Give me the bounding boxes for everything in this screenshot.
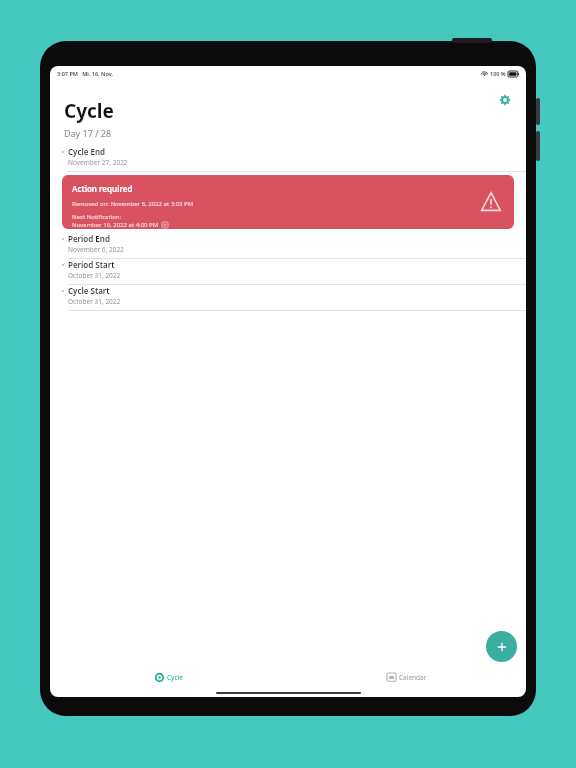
staticText: October 31, 2022 (68, 271, 121, 280)
staticText: Next Notification: (72, 213, 122, 221)
staticText: Period End (68, 233, 110, 244)
button[interactable]: Action required (62, 175, 514, 229)
button[interactable]: Period End (50, 233, 526, 259)
staticText: Action required (72, 183, 133, 194)
button[interactable]: Cycle Start (50, 285, 526, 311)
button[interactable]: Cycle (50, 666, 288, 688)
staticText: Cycle End (68, 146, 106, 157)
staticText: November 27, 2022 (68, 158, 128, 167)
button[interactable]: Calendar (288, 666, 526, 688)
staticText: November 16, 2022 at 4:00 PM (72, 221, 159, 229)
staticText: Period Start (68, 259, 115, 270)
button[interactable]: Add (486, 631, 517, 662)
staticText: Cycle (167, 673, 183, 682)
staticText: Calendar (399, 673, 427, 682)
button[interactable]: Period Start (50, 259, 526, 285)
button[interactable]: Cycle End (50, 146, 526, 172)
staticText: November 6, 2022 (68, 245, 124, 254)
button[interactable]: Settings (496, 91, 514, 109)
staticText: 100 % (490, 70, 506, 77)
staticText: Day 17 / 28 (64, 127, 112, 139)
staticText: Removed on: November 6, 2022 at 3:03 PM (72, 200, 194, 208)
staticText: Cycle (64, 98, 114, 124)
staticText: 3:07 PM Mi. 16. Nov. (57, 70, 113, 77)
staticText: Cycle Start (68, 285, 110, 296)
staticText: October 31, 2022 (68, 297, 121, 306)
